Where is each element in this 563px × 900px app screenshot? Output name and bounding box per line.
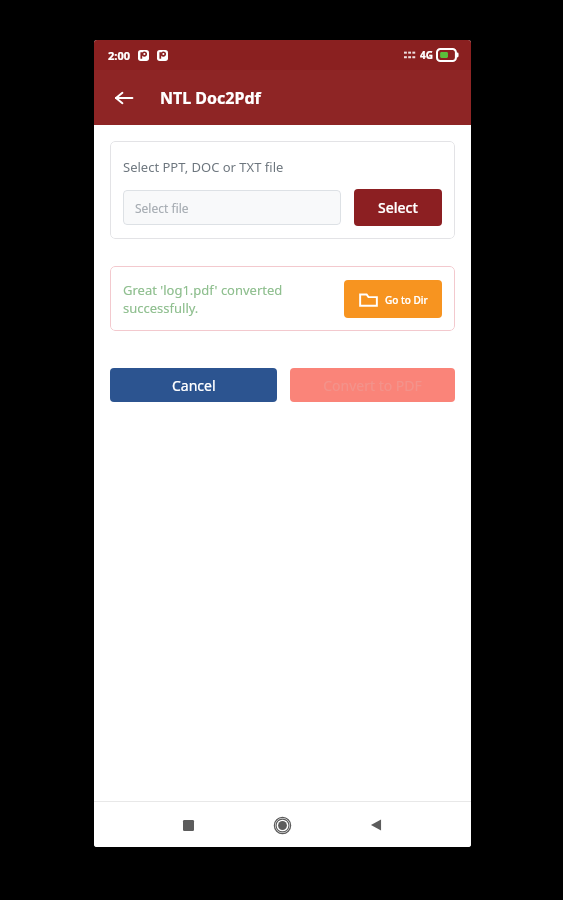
staticText: NTL Doc2Pdf [160,87,261,109]
staticText: Select file [135,200,189,216]
staticText: 4G [420,48,433,62]
button[interactable]: Back [104,78,144,118]
button[interactable]: Go to Dir [344,280,442,318]
staticText: 2:00 [108,48,130,63]
button[interactable]: Home [263,806,301,844]
button[interactable]: Convert to PDF [290,368,455,402]
staticText: Select [378,198,418,217]
button[interactable]: Cancel [110,368,277,402]
button[interactable]: Recent apps [169,806,207,844]
staticText: Great 'log1.pdf' converted successfully. [123,281,334,317]
staticText: Select PPT, DOC or TXT file [123,158,284,176]
staticText: Cancel [172,376,216,395]
button[interactable]: Back [357,806,395,844]
staticText: Go to Dir [385,293,428,307]
staticText: Convert to PDF [323,376,422,395]
button[interactable]: Select file [123,190,341,225]
button[interactable]: Select [354,189,442,226]
